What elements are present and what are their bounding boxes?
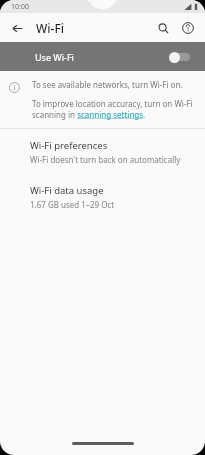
button[interactable]: Wi-Fi data usage — [0, 179, 205, 215]
staticText: To see available networks, turn Wi-Fi on… — [32, 79, 183, 90]
staticText: Wi-Fi data usage — [30, 184, 104, 197]
staticText: Wi-Fi preferences — [30, 139, 108, 152]
button[interactable]: Use Wi-Fi — [0, 42, 205, 71]
button[interactable]: Search — [152, 17, 174, 39]
staticText: To improve location accuracy, turn on Wi… — [32, 98, 193, 120]
button[interactable]: Back — [7, 18, 27, 38]
staticText: Wi-Fi doesn't turn back on automatically — [30, 154, 181, 165]
button[interactable]: Wi-Fi preferences — [0, 134, 205, 170]
button[interactable]: Help — [177, 17, 199, 39]
staticText: Use Wi-Fi — [35, 51, 74, 63]
staticText: 10:00 — [11, 2, 29, 12]
staticText: Wi-Fi — [36, 20, 64, 36]
staticText: 1.67 GB used 1–29 Oct — [30, 199, 115, 210]
